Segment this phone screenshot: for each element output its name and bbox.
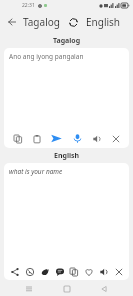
button[interactable]: Back [96,282,112,296]
button[interactable]: Copy [10,131,25,146]
staticText: Tagalog [23,15,60,29]
staticText: Ano ang iyong pangalan [9,52,84,61]
button[interactable]: WhatsApp [23,265,36,278]
button[interactable]: Speak result [97,265,110,278]
staticText: English [86,15,121,29]
button[interactable]: Swap languages [66,15,80,29]
button[interactable]: Ano ang iyong pangalan [4,48,129,128]
button[interactable]: Favourite [82,265,95,278]
button[interactable]: Back [4,14,20,30]
button[interactable]: Paste [29,131,44,146]
button[interactable]: what is your name [4,163,129,262]
button[interactable]: Translate [48,130,64,146]
button[interactable]: Speak [89,131,104,146]
button[interactable]: Recents [21,282,37,296]
button[interactable]: Copy result [67,265,80,278]
staticText: 22:31 [22,2,35,9]
button[interactable]: Close [112,265,125,278]
button[interactable]: Share [8,265,21,278]
button[interactable]: Clear [108,131,123,146]
staticText: Tagalog [53,36,81,46]
button[interactable]: English [83,14,124,30]
button[interactable]: Twitter [38,265,51,278]
button[interactable]: Message [53,265,66,278]
staticText: English [54,151,80,161]
button[interactable]: Tagalog [20,14,63,30]
button[interactable]: Voice input [69,130,85,146]
staticText: what is your name [9,167,63,176]
button[interactable]: Home [59,282,75,296]
